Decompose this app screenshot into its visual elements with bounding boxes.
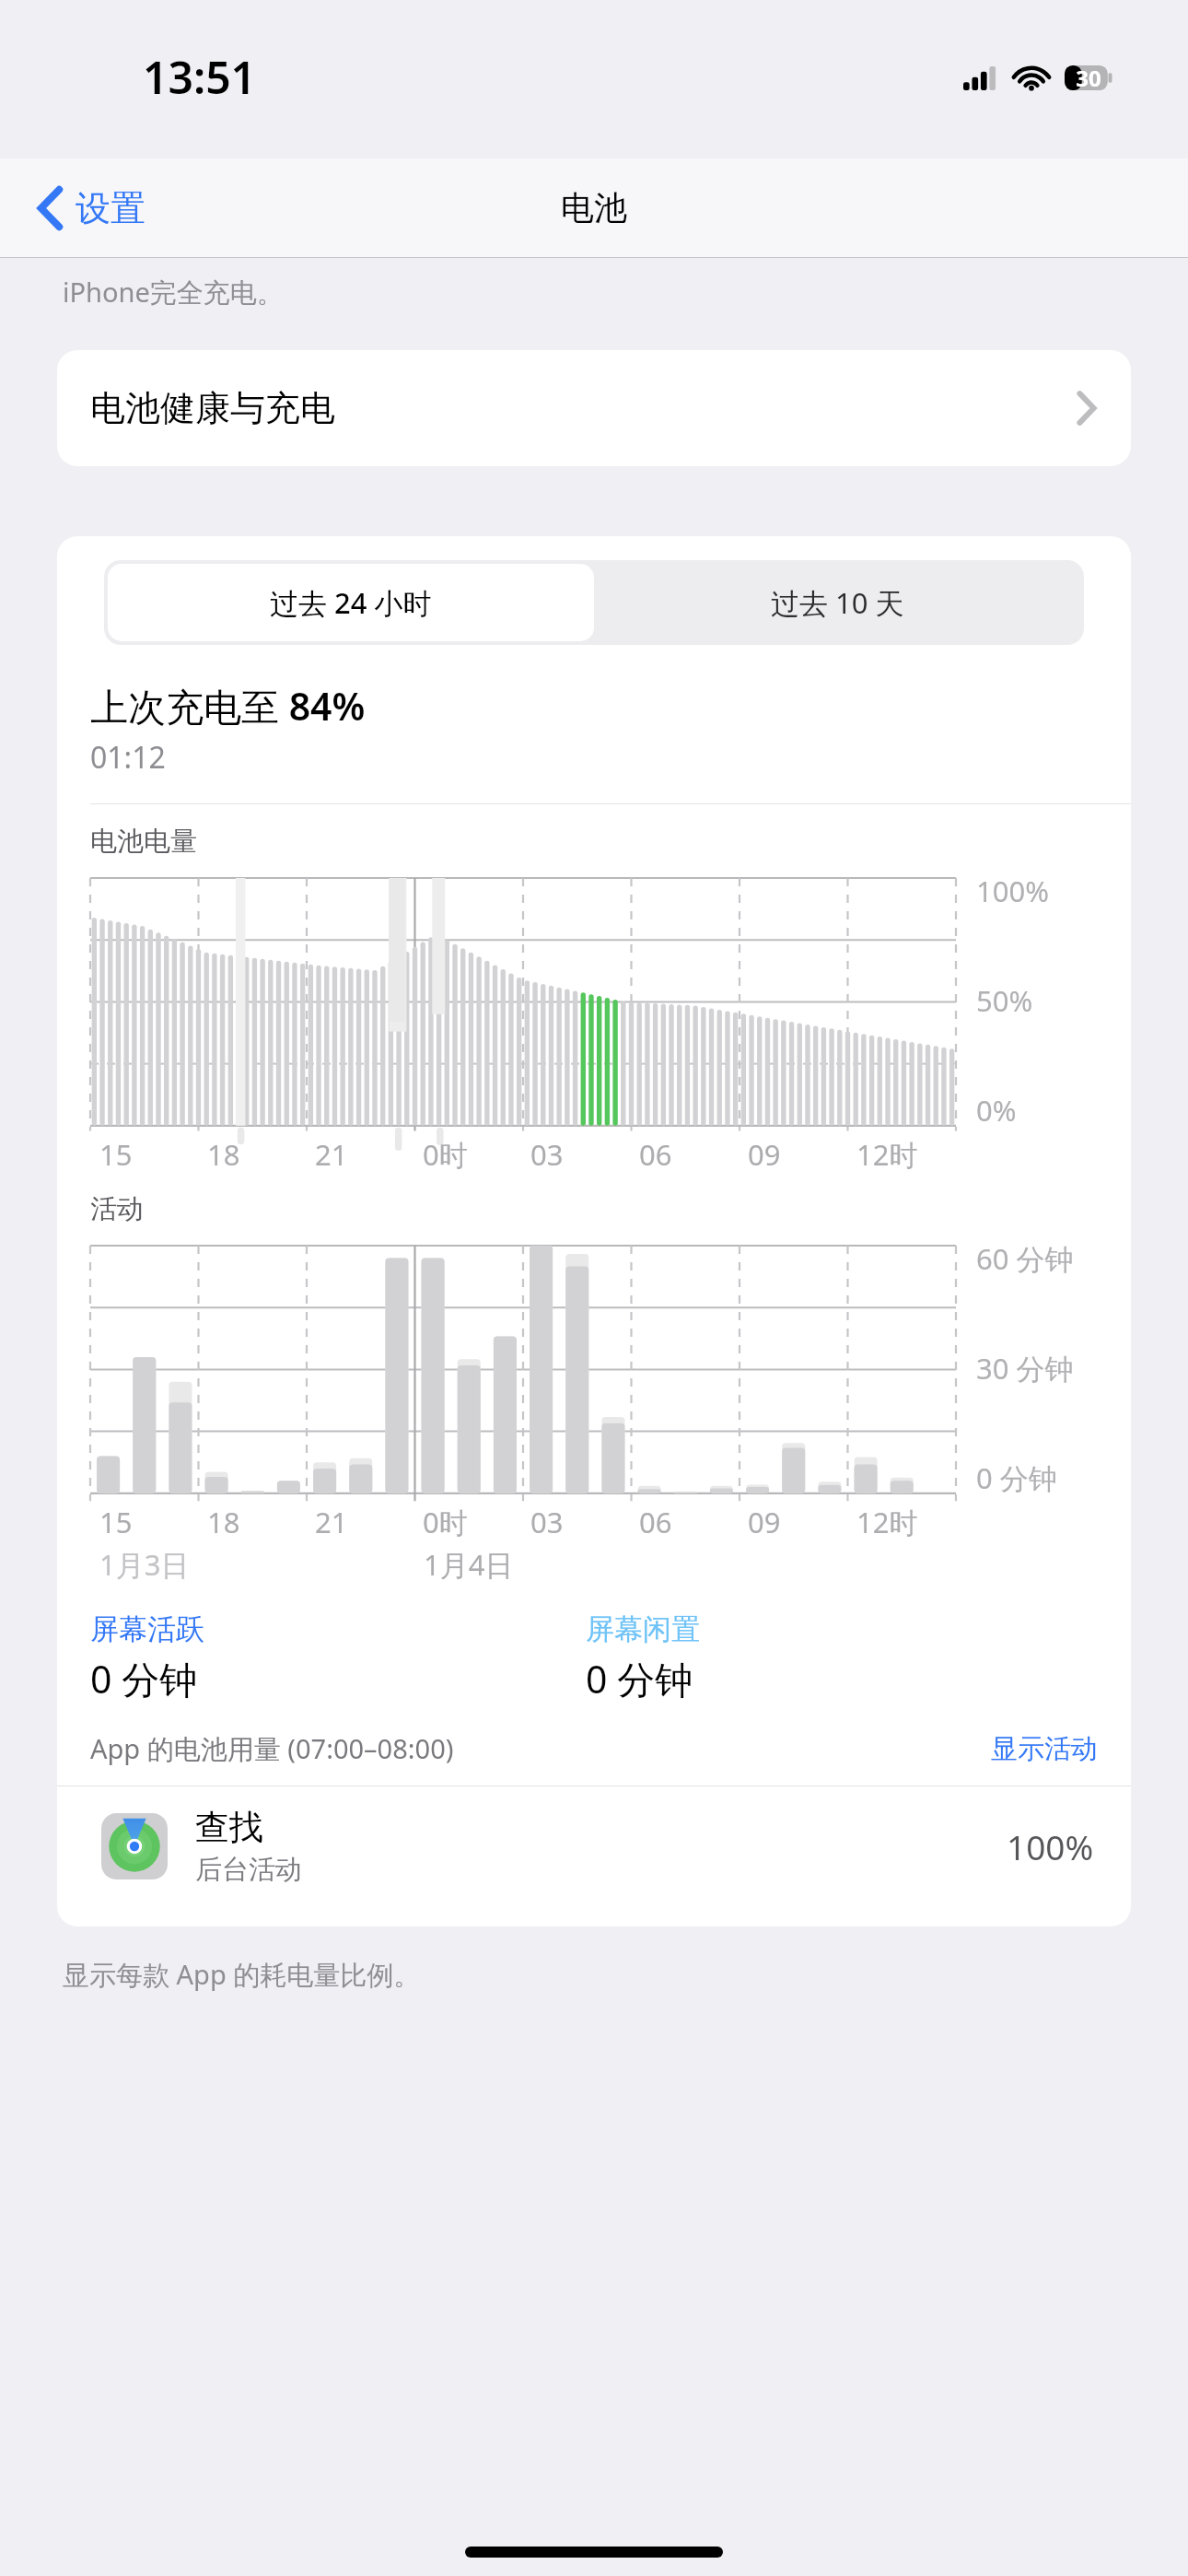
staticText: 21 bbox=[315, 1503, 348, 1541]
staticText: 屏幕活跃 bbox=[90, 1611, 204, 1647]
staticText: 活动 bbox=[90, 1192, 144, 1226]
staticText: 0 分钟 bbox=[586, 1653, 693, 1704]
staticText: 显示活动 bbox=[991, 1732, 1098, 1766]
staticText: 0 分钟 bbox=[976, 1458, 1057, 1497]
staticText: 查找 bbox=[195, 1806, 263, 1849]
staticText: 03 bbox=[530, 1135, 564, 1174]
staticText: 电池健康与充电 bbox=[90, 386, 335, 430]
staticText: 过去 24 小时 bbox=[270, 583, 432, 622]
staticText: 18 bbox=[207, 1135, 240, 1174]
staticText: 30 分钟 bbox=[976, 1349, 1074, 1388]
staticText: 0 分钟 bbox=[90, 1653, 198, 1704]
other: 查找 App 图标 bbox=[101, 1813, 168, 1879]
staticText: 13:51 bbox=[143, 47, 257, 107]
staticText: 18 bbox=[207, 1503, 240, 1541]
button[interactable]: 设置 bbox=[33, 179, 151, 238]
staticText: 06 bbox=[639, 1503, 672, 1541]
staticText: iPhone完全充电。 bbox=[63, 274, 284, 310]
staticText: 0时 bbox=[423, 1135, 468, 1174]
staticText: App 的电池用量 (07:00–08:00) bbox=[90, 1730, 454, 1767]
staticText: 60 分钟 bbox=[976, 1239, 1074, 1278]
staticText: 06 bbox=[639, 1135, 672, 1174]
staticText: 12时 bbox=[856, 1135, 918, 1174]
button[interactable]: 电池健康与充电 bbox=[57, 350, 1131, 466]
staticText: 电池电量 bbox=[90, 825, 197, 859]
staticText: 30 bbox=[1068, 63, 1109, 93]
staticText: 显示每款 App 的耗电量比例。 bbox=[63, 1956, 421, 1993]
staticText: 1月3日 bbox=[99, 1545, 190, 1584]
staticText: 15 bbox=[99, 1135, 133, 1174]
staticText: 过去 10 天 bbox=[771, 583, 904, 622]
staticText: 0% bbox=[976, 1091, 1017, 1130]
staticText: 后台活动 bbox=[195, 1853, 302, 1887]
staticText: 屏幕闲置 bbox=[586, 1611, 700, 1647]
staticText: 电池 bbox=[561, 187, 627, 228]
button[interactable]: 过去 10 天 bbox=[594, 564, 1080, 641]
staticText: 1月4日 bbox=[424, 1545, 514, 1584]
staticText: 100% bbox=[1007, 1823, 1094, 1869]
staticText: 03 bbox=[530, 1503, 564, 1541]
button[interactable]: 过去 24 小时 bbox=[108, 564, 594, 641]
staticText: 12时 bbox=[856, 1503, 918, 1541]
staticText: 50% bbox=[976, 981, 1033, 1020]
staticText: 09 bbox=[748, 1503, 781, 1541]
button[interactable]: 显示活动 bbox=[991, 1732, 1098, 1766]
staticText: 0时 bbox=[423, 1503, 468, 1541]
staticText: 09 bbox=[748, 1135, 781, 1174]
staticText: 01:12 bbox=[90, 737, 166, 778]
staticText: 设置 bbox=[76, 186, 146, 230]
staticText: 15 bbox=[99, 1503, 133, 1541]
staticText: 21 bbox=[315, 1135, 348, 1174]
staticText: 上次充电至 84% bbox=[90, 680, 366, 732]
staticText: 100% bbox=[976, 872, 1049, 910]
button[interactable]: 查找 App 图标 bbox=[57, 1786, 1131, 1906]
